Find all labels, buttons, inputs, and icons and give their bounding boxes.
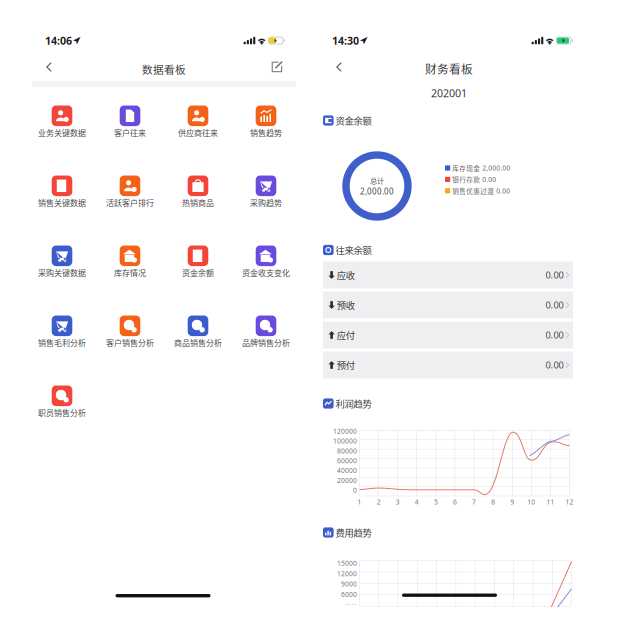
staticText: 20000 bbox=[337, 476, 357, 485]
button[interactable]: 采购关键数据 bbox=[28, 243, 96, 280]
staticText: 费用趋势 bbox=[336, 526, 372, 539]
staticText: 供应商往来 bbox=[178, 127, 218, 138]
staticText bbox=[334, 529, 336, 536]
button[interactable]: 销售关键数据 bbox=[28, 173, 96, 210]
staticText: 8 bbox=[491, 497, 495, 506]
button[interactable]: 商品销售分析 bbox=[164, 313, 232, 350]
staticText: 0.00 bbox=[545, 359, 563, 371]
staticText: 120000 bbox=[333, 427, 357, 436]
staticText: 总计 bbox=[370, 175, 384, 186]
staticText: 预收 bbox=[337, 298, 355, 312]
staticText bbox=[334, 400, 336, 407]
staticText: 0.00 bbox=[482, 175, 496, 184]
button[interactable]: 活跃客户排行 bbox=[96, 173, 164, 210]
button[interactable]: Back bbox=[326, 54, 352, 80]
staticText: - - - - bbox=[346, 600, 357, 607]
staticText: 4 bbox=[415, 497, 419, 506]
staticText bbox=[334, 246, 336, 254]
staticText bbox=[335, 361, 337, 369]
staticText: 职员销售分析 bbox=[38, 407, 86, 418]
staticText: 销售趋势 bbox=[250, 127, 282, 138]
button[interactable] bbox=[323, 291, 573, 318]
staticText: 10 bbox=[527, 497, 535, 506]
staticText bbox=[335, 301, 337, 309]
staticText bbox=[72, 37, 73, 44]
staticText: 9 bbox=[510, 497, 514, 506]
staticText: 客户销售分析 bbox=[106, 337, 154, 348]
button[interactable]: 资金余额 bbox=[164, 243, 232, 280]
button[interactable] bbox=[323, 321, 573, 348]
staticText: 9000 bbox=[341, 580, 357, 588]
staticText: 2,000.00 bbox=[482, 164, 510, 172]
button[interactable]: 销售趋势 bbox=[232, 103, 300, 140]
staticText: 11 bbox=[546, 497, 554, 506]
button[interactable]: 销售毛利分析 bbox=[28, 313, 96, 350]
staticText: 3 bbox=[396, 497, 400, 506]
staticText: 数据看板 bbox=[142, 61, 186, 77]
staticText: 销售优惠过渡 bbox=[452, 186, 494, 196]
staticText: 业务关键数据 bbox=[38, 127, 86, 138]
staticText: 客户往来 bbox=[114, 127, 146, 138]
staticText: 财务看板 bbox=[425, 60, 473, 77]
staticText: 销售毛利分析 bbox=[38, 337, 86, 348]
staticText: 商品销售分析 bbox=[174, 337, 222, 348]
staticText: 12000 bbox=[337, 569, 357, 578]
staticText bbox=[450, 165, 452, 171]
staticText: 应付 bbox=[337, 328, 355, 342]
button[interactable] bbox=[323, 351, 573, 378]
button[interactable]: 客户销售分析 bbox=[96, 313, 164, 350]
staticText: 活跃客户排行 bbox=[106, 197, 154, 208]
staticText: 银行存款 bbox=[452, 175, 480, 184]
staticText: 6 bbox=[453, 497, 457, 506]
staticText: 202001 bbox=[431, 86, 467, 100]
staticText: 销售关键数据 bbox=[38, 197, 86, 208]
button[interactable]: 业务关键数据 bbox=[28, 103, 96, 140]
staticText: 库存现金 bbox=[452, 163, 480, 173]
staticText: 资金余额 bbox=[336, 114, 372, 127]
staticText: 60000 bbox=[337, 456, 357, 465]
staticText: 1 bbox=[357, 497, 361, 506]
button[interactable]: 职员销售分析 bbox=[28, 383, 96, 420]
button[interactable]: Back bbox=[36, 54, 62, 80]
staticText: 应收 bbox=[337, 268, 355, 282]
staticText bbox=[450, 188, 452, 193]
button[interactable]: Compose bbox=[264, 54, 290, 80]
staticText: 2 bbox=[377, 497, 381, 506]
staticText: 14:06 bbox=[45, 33, 72, 48]
staticText: 15000 bbox=[337, 559, 357, 568]
staticText: 采购趋势 bbox=[250, 197, 282, 208]
staticText: 0.00 bbox=[545, 269, 563, 281]
button[interactable]: 客户往来 bbox=[96, 103, 164, 140]
staticText: 往来余额 bbox=[336, 243, 372, 257]
button[interactable]: 供应商往来 bbox=[164, 103, 232, 140]
staticText: 0.00 bbox=[545, 299, 563, 311]
staticText: 80000 bbox=[337, 446, 357, 455]
staticText: 14:30 bbox=[332, 33, 359, 48]
staticText: 0.00 bbox=[545, 329, 563, 341]
staticText: 资金余额 bbox=[182, 267, 214, 278]
staticText: 品牌销售分析 bbox=[242, 337, 290, 348]
staticText: 热销商品 bbox=[182, 197, 214, 208]
staticText: 6000 bbox=[341, 590, 357, 599]
staticText: 40000 bbox=[337, 466, 357, 475]
staticText: 采购关键数据 bbox=[38, 267, 86, 278]
button[interactable]: 库存情况 bbox=[96, 243, 164, 280]
staticText: 12 bbox=[565, 497, 573, 506]
staticText: 5 bbox=[434, 497, 438, 506]
button[interactable]: 采购趋势 bbox=[232, 173, 300, 210]
button[interactable]: 品牌销售分析 bbox=[232, 313, 300, 350]
button[interactable]: 资金收支变化 bbox=[232, 243, 300, 280]
staticText: 利润趋势 bbox=[336, 397, 372, 410]
button[interactable] bbox=[323, 261, 573, 288]
staticText bbox=[359, 37, 360, 44]
button[interactable]: 热销商品 bbox=[164, 173, 232, 210]
